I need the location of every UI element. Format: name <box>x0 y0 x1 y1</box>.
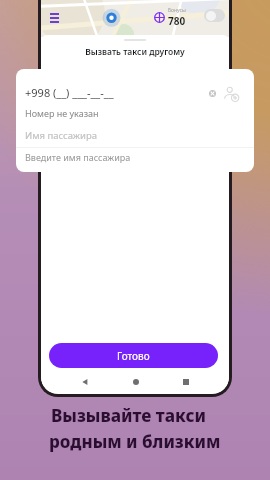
staticText: Готово <box>117 349 150 363</box>
staticText: Вызывайте такси <box>51 404 207 427</box>
button[interactable]: Выбрать контакт <box>221 84 241 104</box>
button[interactable]: Переключатель <box>204 9 225 22</box>
button[interactable]: Назад <box>79 376 90 387</box>
staticText: Введите имя пассажира <box>25 151 131 163</box>
button[interactable]: Обзор <box>180 376 191 387</box>
button[interactable]: +998 (__) ___-__-__ <box>16 69 254 147</box>
button[interactable]: Очистить <box>205 86 219 100</box>
staticText: Номер не указан <box>25 107 99 119</box>
staticText: +998 (__) ___-__-__ <box>25 85 114 100</box>
staticText: Имя пассажира <box>25 129 98 142</box>
staticText: Вызвать такси другому <box>41 46 229 58</box>
staticText: родным и близким <box>49 430 221 453</box>
button[interactable]: Домой <box>130 376 141 387</box>
staticText: Бонусы <box>168 7 186 14</box>
button[interactable]: Готово <box>49 343 218 368</box>
button[interactable]: Имя пассажира <box>16 124 254 172</box>
staticText: 780 <box>168 14 186 28</box>
